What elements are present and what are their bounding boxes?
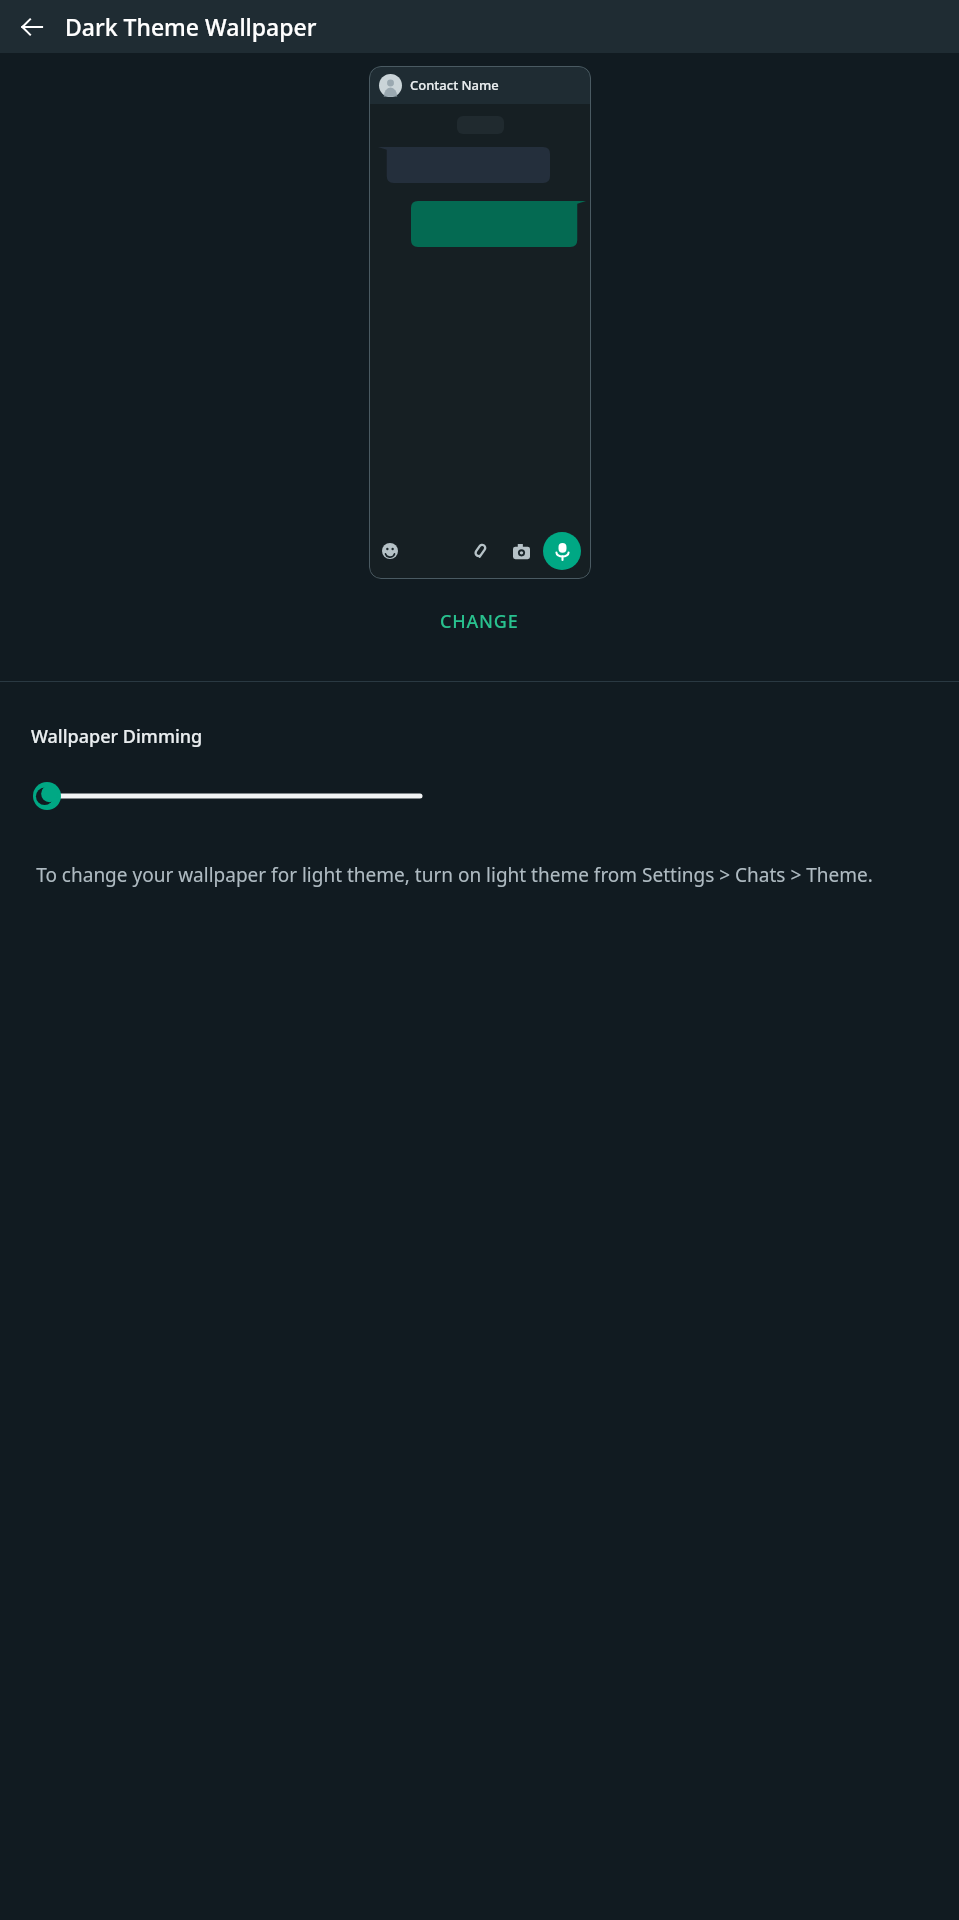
- button[interactable]: Wallpaper dimming slider: [0, 774, 959, 818]
- staticText: Contact Name: [410, 76, 499, 94]
- button[interactable]: CHANGE: [422, 601, 537, 642]
- button[interactable]: Voice message: [543, 532, 581, 570]
- button[interactable]: Back: [10, 5, 54, 49]
- button[interactable]: Emoji: [379, 540, 401, 562]
- staticText: Wallpaper Dimming: [31, 724, 203, 749]
- staticText: Dark Theme Wallpaper: [65, 11, 317, 42]
- button[interactable]: Camera: [509, 539, 533, 563]
- staticText: CHANGE: [440, 609, 519, 634]
- staticText: To change your wallpaper for light theme…: [36, 862, 873, 888]
- button[interactable]: Attach: [468, 539, 492, 563]
